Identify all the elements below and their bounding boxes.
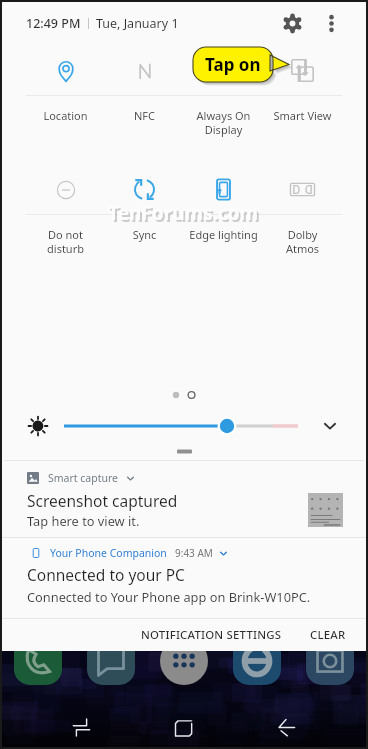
button[interactable]: CLEAR bbox=[305, 619, 351, 651]
button[interactable]: Apps bbox=[160, 637, 208, 685]
button[interactable]: Sync bbox=[105, 165, 184, 242]
button[interactable]: Expand brightness settings bbox=[314, 410, 346, 442]
staticText: Location bbox=[26, 108, 105, 123]
staticText: Screenshot captured bbox=[27, 490, 178, 511]
button[interactable]: Home bbox=[160, 704, 206, 749]
button[interactable]: Edge lighting bbox=[184, 165, 263, 242]
button[interactable]: Dolby Atmos bbox=[263, 165, 342, 256]
staticText: Connected to your PC bbox=[27, 564, 185, 585]
button[interactable]: Phone bbox=[14, 637, 62, 685]
button[interactable]: Settings bbox=[275, 6, 309, 40]
button[interactable]: Messages bbox=[87, 637, 135, 685]
staticText: Tap here to view it. bbox=[27, 512, 140, 529]
staticText: 9:43 AM bbox=[175, 546, 213, 560]
staticText: Smart capture bbox=[48, 471, 119, 485]
staticText: TenForums.com bbox=[108, 200, 259, 226]
button[interactable]: Camera bbox=[306, 637, 354, 685]
staticText: Smart View bbox=[263, 108, 342, 123]
button[interactable]: Your Phone Companion bbox=[0, 538, 368, 618]
staticText: CLEAR bbox=[310, 627, 346, 643]
staticText: TenForums.com bbox=[110, 202, 261, 228]
button[interactable]: Tap on bbox=[193, 47, 273, 82]
button[interactable]: Recent apps bbox=[58, 704, 104, 749]
staticText: Your Phone Companion bbox=[50, 546, 167, 560]
button[interactable]: Browser bbox=[233, 637, 281, 685]
staticText: Tue, January 1 bbox=[96, 15, 179, 32]
button[interactable]: NFC bbox=[105, 46, 184, 123]
staticText: Connected to Your Phone app on Brink-W10… bbox=[27, 588, 311, 605]
staticText: Edge lighting bbox=[184, 227, 263, 242]
button[interactable]: Location bbox=[26, 46, 105, 123]
staticText: Dolby Atmos bbox=[263, 227, 342, 256]
staticText: NFC bbox=[105, 108, 184, 123]
button[interactable]: Smart View bbox=[263, 46, 342, 123]
button[interactable]: NOTIFICATION SETTINGS bbox=[136, 619, 287, 651]
button[interactable]: Always On Display bbox=[184, 46, 263, 137]
staticText: Sync bbox=[105, 227, 184, 242]
staticText: Do not disturb bbox=[26, 227, 105, 256]
button[interactable]: Brightness bbox=[22, 410, 54, 442]
staticText: 12:49 PM bbox=[26, 15, 81, 32]
button[interactable]: More options bbox=[314, 6, 348, 40]
button[interactable]: Back bbox=[263, 704, 309, 749]
button[interactable]: Do not disturb bbox=[26, 165, 105, 256]
button[interactable]: Smart capture bbox=[0, 461, 368, 537]
staticText: Always On Display bbox=[184, 108, 263, 137]
button[interactable]: Brightness slider bbox=[60, 410, 304, 442]
staticText: NOTIFICATION SETTINGS bbox=[141, 627, 282, 643]
staticText: Tap on bbox=[205, 53, 261, 76]
